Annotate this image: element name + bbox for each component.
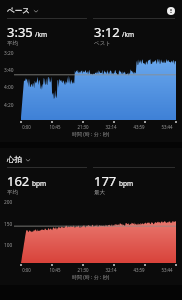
staticText: 150 <box>4 221 13 228</box>
staticText: 時間 (時 : 分 : 秒) <box>72 274 110 281</box>
staticText: 200 <box>4 199 13 206</box>
staticText: 心拍 <box>7 155 22 164</box>
staticText: 平均 <box>7 40 18 47</box>
staticText: 53:44 <box>161 267 173 273</box>
staticText: 10:45 <box>49 267 61 273</box>
staticText: 10:45 <box>49 124 61 130</box>
staticText: 4:00 <box>4 84 14 91</box>
staticText: 0:00 <box>22 124 31 130</box>
staticText: 53:44 <box>161 124 173 130</box>
staticText: 21:30 <box>77 124 89 130</box>
staticText: 3:40 <box>4 67 14 74</box>
staticText: 0:00 <box>22 267 31 273</box>
staticText: /km <box>122 30 134 39</box>
button[interactable]: Information <box>164 4 177 17</box>
staticText: 43:59 <box>133 267 145 273</box>
staticText: 3:12 <box>94 23 120 41</box>
staticText: 43:59 <box>133 124 145 130</box>
staticText: 21:30 <box>77 267 89 273</box>
staticText: 3:35 <box>7 23 33 41</box>
staticText: /km <box>35 30 47 39</box>
staticText: 最大 <box>94 189 105 196</box>
staticText: 3:20 <box>4 50 14 57</box>
staticText: 32:14 <box>105 267 117 273</box>
button[interactable]: ペース <box>0 4 45 17</box>
button[interactable]: 心拍 <box>0 153 37 166</box>
staticText: bpm <box>32 179 47 188</box>
staticText: 時間 (時 : 分 : 秒) <box>72 131 110 138</box>
staticText: 平均 <box>7 189 18 196</box>
staticText: 177 <box>94 172 117 190</box>
staticText: 32:14 <box>105 124 117 130</box>
staticText: ペース <box>7 6 30 15</box>
staticText: ベスト <box>94 40 111 47</box>
staticText: 100 <box>4 242 13 249</box>
staticText: 4:20 <box>4 102 14 109</box>
staticText: bpm <box>119 179 134 188</box>
staticText: 162 <box>7 172 30 190</box>
